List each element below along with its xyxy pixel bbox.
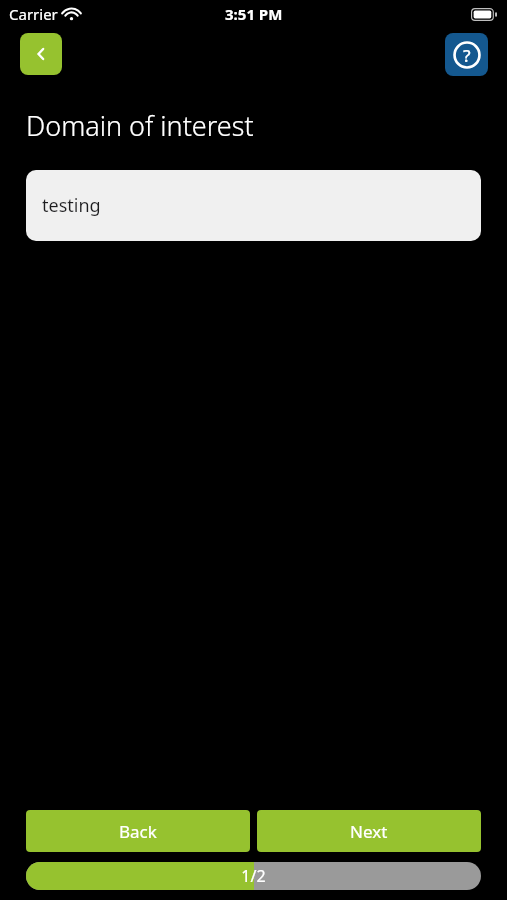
- button[interactable]: Next: [257, 810, 481, 852]
- staticText: Domain of interest: [26, 107, 254, 144]
- staticText: 1/2: [26, 865, 481, 887]
- staticText: Next: [350, 820, 388, 843]
- staticText: 3:51 PM: [225, 4, 283, 24]
- button[interactable]: 1/2: [26, 862, 481, 890]
- staticText: Back: [119, 820, 157, 843]
- staticText: testing: [42, 193, 101, 218]
- staticText: Carrier: [9, 4, 58, 24]
- staticText: ?: [463, 44, 471, 67]
- button[interactable]: testing: [26, 170, 481, 241]
- button[interactable]: Back: [26, 810, 250, 852]
- button[interactable]: Help: [445, 33, 488, 76]
- button[interactable]: Back: [20, 33, 62, 75]
